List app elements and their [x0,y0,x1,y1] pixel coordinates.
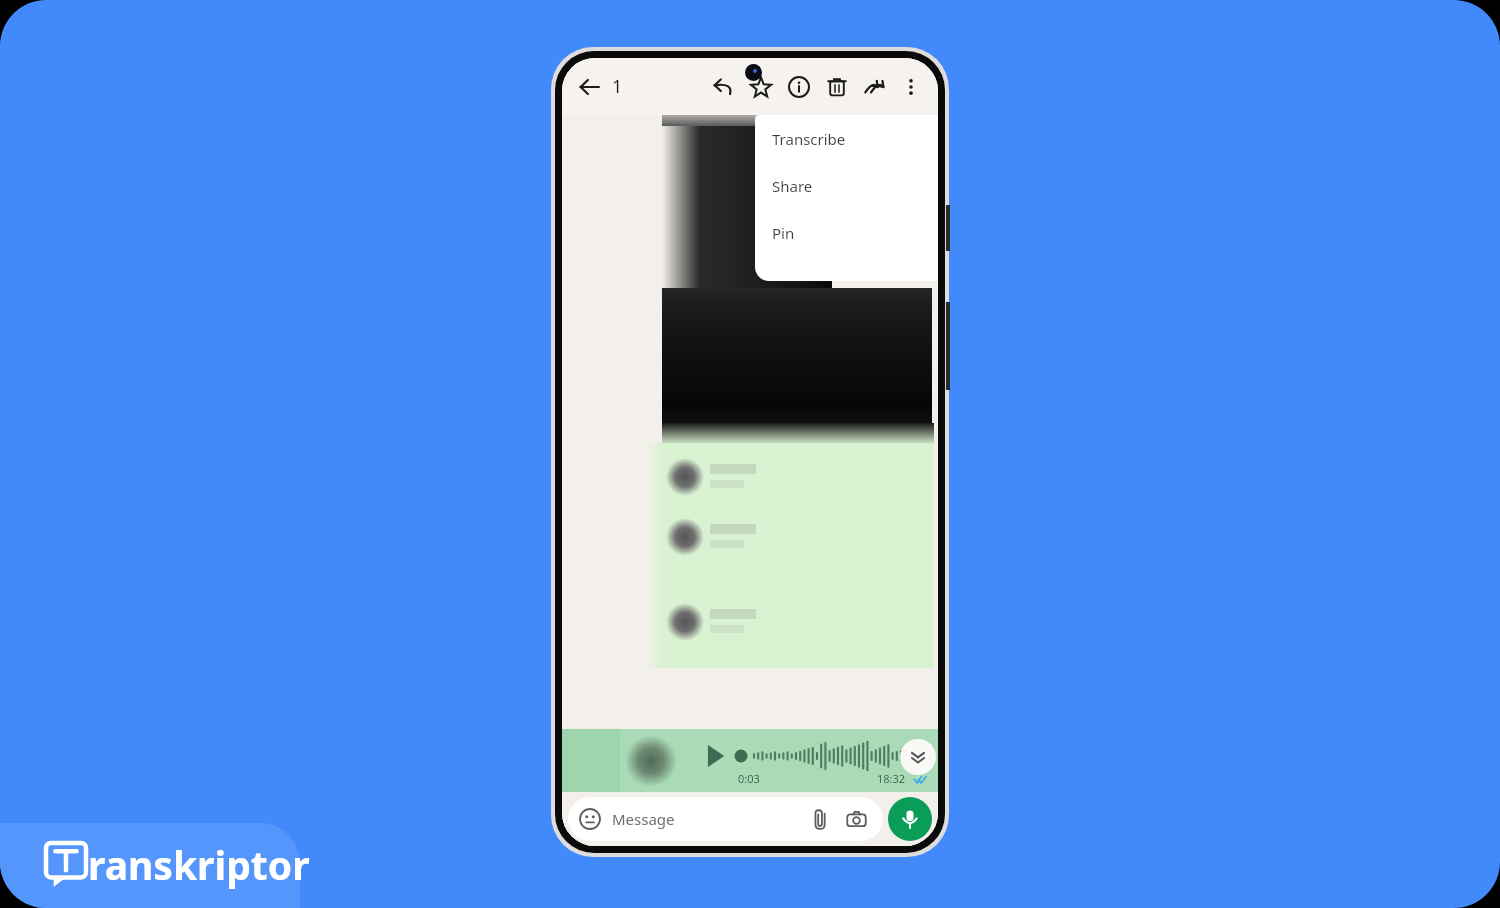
staticText: 18:32 [877,771,906,786]
button[interactable]: Play voice message [704,745,726,767]
button[interactable]: Transcribe [755,115,938,162]
staticText: 0:03 [738,771,760,786]
button[interactable]: Back [574,72,604,102]
button[interactable]: Camera [841,804,871,834]
staticText: 1 [612,74,646,99]
button[interactable]: Message [568,797,883,841]
button[interactable]: More options [896,72,926,102]
button[interactable]: Scroll to bottom [900,739,936,775]
button[interactable]: Record voice message [888,797,932,841]
staticText: Share [772,176,813,196]
button[interactable]: Pin [755,209,938,256]
staticText: Transcribe [772,129,846,149]
button[interactable]: Info [784,72,814,102]
button[interactable]: Star [746,72,776,102]
button[interactable]: Reply [708,72,738,102]
staticText: ranskriptor [88,838,310,891]
button[interactable]: Share [755,162,938,209]
button[interactable]: Attach [805,804,835,834]
button[interactable]: Delete [822,72,852,102]
button[interactable]: Forward [860,72,890,102]
staticText: Message [612,809,805,829]
staticText: Pin [772,223,795,243]
